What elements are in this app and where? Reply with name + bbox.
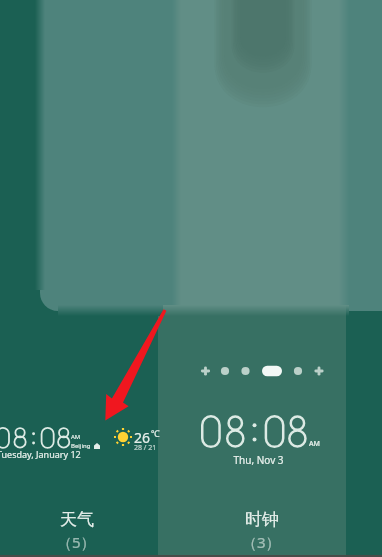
staticText: 时钟 — [245, 509, 279, 530]
staticText: Thu, Nov 3 — [233, 453, 284, 467]
staticText: 天气 — [60, 509, 94, 530]
staticText: ℃ — [151, 427, 160, 439]
staticText: AM — [309, 439, 321, 449]
staticText: Tuesday, January 12 — [0, 448, 81, 460]
staticText: Beijing — [71, 442, 91, 450]
staticText: （3） — [242, 532, 281, 552]
button[interactable]: 时钟 — [164, 490, 358, 557]
button[interactable]: Widget page indicator — [196, 360, 326, 382]
staticText: 28 / 21 — [134, 443, 157, 453]
staticText: 26 — [134, 428, 151, 447]
staticText: AM — [71, 433, 81, 441]
button[interactable]: 天气 — [0, 490, 152, 557]
button[interactable]: Clock widget preview — [161, 311, 349, 557]
staticText: （5） — [57, 532, 96, 552]
